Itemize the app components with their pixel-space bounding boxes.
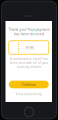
staticText: A confirmation email has been sent with … (10, 57, 48, 69)
button[interactable]: View my booking (16, 91, 42, 96)
staticText: Continue (22, 82, 36, 87)
staticText: €195 (26, 45, 34, 50)
staticText: View my booking (16, 92, 42, 96)
staticText: Thank you! Your payment has been receive… (8, 27, 49, 36)
button[interactable]: Continue (9, 81, 49, 88)
